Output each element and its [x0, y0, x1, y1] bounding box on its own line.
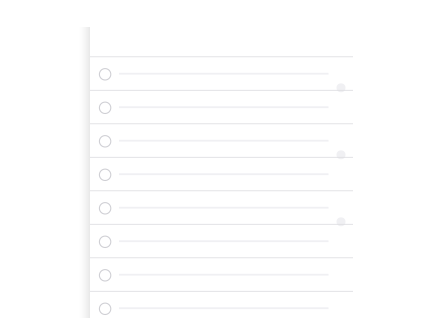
- button[interactable]: [90, 292, 353, 318]
- button[interactable]: [90, 225, 353, 257]
- button[interactable]: [90, 57, 353, 90]
- button[interactable]: [90, 124, 353, 157]
- button[interactable]: [90, 191, 353, 224]
- button[interactable]: [90, 158, 353, 190]
- button[interactable]: [90, 258, 353, 291]
- button[interactable]: [90, 91, 353, 123]
